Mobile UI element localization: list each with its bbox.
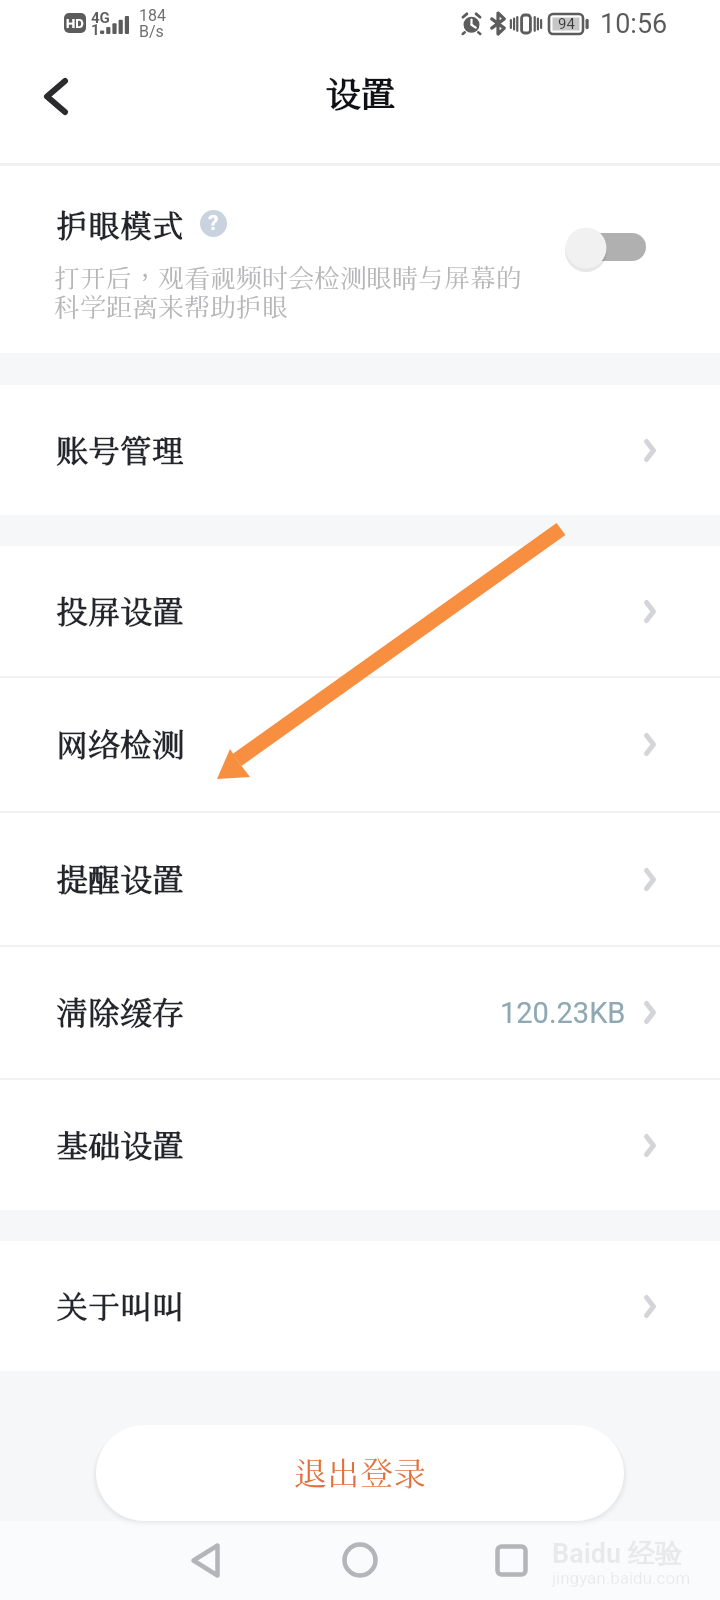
button[interactable]: Eye protection mode toggle, off — [560, 226, 652, 272]
button[interactable]: 清除缓存 — [0, 947, 720, 1078]
staticText: 设置 — [325, 73, 396, 116]
staticText: 投屏设置 — [56, 592, 185, 631]
button[interactable]: 投屏设置 — [0, 546, 720, 676]
staticText: 提醒设置 — [56, 860, 185, 899]
button[interactable]: 基础设置 — [0, 1080, 720, 1210]
staticText: 10:56 — [600, 8, 668, 40]
staticText: 基础设置 — [56, 1126, 185, 1165]
staticText: HD — [66, 16, 84, 31]
button[interactable]: 提醒设置 — [0, 813, 720, 945]
staticText: 关于叫叫 — [56, 1287, 185, 1326]
staticText: 打开后，观看视频时会检测眼睛与屏幕的 科学距离来帮助护眼 — [54, 262, 523, 323]
staticText: 94 — [558, 15, 575, 33]
button[interactable]: Back — [170, 1525, 240, 1595]
button[interactable]: 关于叫叫 — [0, 1241, 720, 1371]
button[interactable]: 退出登录 — [96, 1425, 624, 1521]
staticText: 账号管理 — [56, 431, 185, 470]
staticText: 4G — [91, 9, 110, 27]
button[interactable]: 网络检测 — [0, 678, 720, 811]
staticText: Baidu 经验 — [552, 1537, 682, 1571]
button[interactable]: Recent apps — [476, 1525, 546, 1595]
button[interactable]: 账号管理 — [0, 385, 720, 515]
staticText: jingyan.baidu.com — [552, 1568, 691, 1588]
staticText: 1 — [91, 21, 100, 39]
staticText: 退出登录 — [294, 1453, 426, 1493]
staticText: 184 — [139, 6, 166, 25]
staticText: B/s — [139, 22, 164, 41]
staticText: 护眼模式 — [56, 206, 185, 245]
button[interactable]: Help about eye protection mode — [200, 210, 227, 237]
button[interactable]: Back — [28, 68, 84, 124]
staticText: 120.23KB — [500, 996, 626, 1030]
button[interactable]: Home — [325, 1525, 395, 1595]
staticText: ? — [208, 211, 219, 236]
staticText: 清除缓存 — [56, 993, 185, 1032]
staticText: 网络检测 — [56, 725, 185, 764]
